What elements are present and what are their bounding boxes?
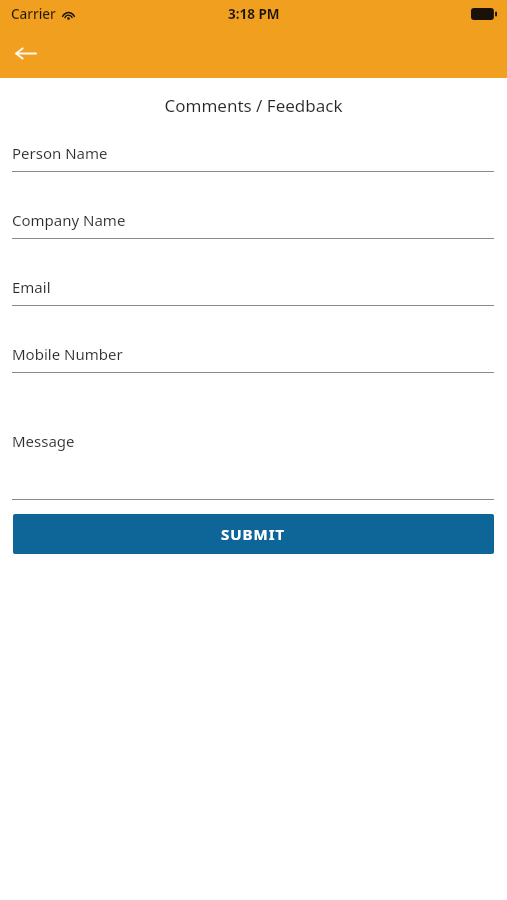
staticText: Comments / Feedback bbox=[0, 94, 507, 117]
staticText: Carrier bbox=[11, 5, 56, 23]
staticText: SUBMIT bbox=[221, 524, 286, 544]
button[interactable]: SUBMIT bbox=[13, 514, 494, 554]
staticText: Email bbox=[12, 277, 51, 297]
button[interactable]: Email bbox=[0, 277, 507, 306]
button[interactable]: Back bbox=[8, 36, 42, 70]
button[interactable]: Message bbox=[0, 431, 507, 500]
button[interactable]: Company Name bbox=[0, 210, 507, 239]
staticText: 3:18 PM bbox=[228, 5, 280, 23]
staticText: Person Name bbox=[12, 143, 108, 163]
staticText: Company Name bbox=[12, 210, 126, 230]
staticText: Mobile Number bbox=[12, 344, 123, 364]
button[interactable]: Mobile Number bbox=[0, 344, 507, 373]
staticText: Message bbox=[12, 431, 75, 451]
button[interactable]: Person Name bbox=[0, 143, 507, 172]
